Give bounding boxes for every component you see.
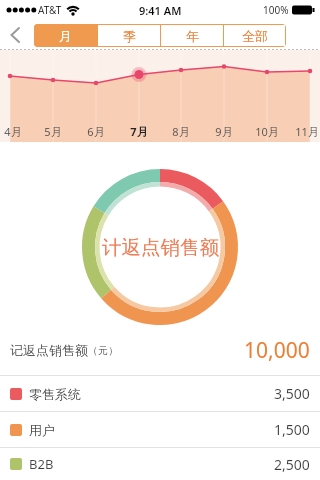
staticText: 4月 bbox=[0, 124, 29, 139]
staticText: 6月 bbox=[80, 124, 112, 139]
button[interactable]: 月 bbox=[34, 24, 97, 47]
staticText: （元） bbox=[88, 344, 118, 357]
staticText: 月 bbox=[59, 28, 72, 44]
staticText: 3,500 bbox=[274, 384, 310, 403]
button[interactable]: 季 bbox=[98, 25, 160, 46]
button[interactable] bbox=[4, 24, 26, 46]
staticText: 1,500 bbox=[274, 420, 310, 439]
staticText: 9月 bbox=[208, 124, 240, 139]
staticText: 11月 bbox=[291, 124, 320, 139]
staticText: 9:41 AM bbox=[139, 3, 182, 18]
staticText: 10月 bbox=[251, 124, 283, 139]
staticText: 全部 bbox=[242, 28, 268, 44]
staticText: 零售系统 bbox=[29, 386, 81, 402]
staticText: 用户 bbox=[29, 422, 55, 438]
staticText: 计返点销售额 bbox=[102, 235, 219, 260]
button[interactable]: 用户 bbox=[0, 411, 320, 447]
staticText: 5月 bbox=[37, 124, 69, 139]
staticText: AT&T bbox=[38, 3, 62, 17]
staticText: 10,000 bbox=[244, 336, 310, 365]
staticText: 100% bbox=[263, 3, 289, 17]
staticText: 季 bbox=[123, 28, 136, 44]
staticText: 8月 bbox=[165, 124, 197, 139]
staticText: 2,500 bbox=[274, 455, 310, 474]
staticText: 年 bbox=[186, 28, 199, 44]
button[interactable]: 年 bbox=[161, 25, 223, 46]
staticText: 记返点销售额 bbox=[10, 342, 88, 358]
staticText: B2B bbox=[29, 455, 54, 473]
button[interactable]: 零售系统 bbox=[0, 375, 320, 411]
button[interactable]: B2B bbox=[0, 447, 320, 480]
button[interactable]: 全部 bbox=[224, 25, 285, 46]
staticText: 7月 bbox=[123, 124, 155, 139]
